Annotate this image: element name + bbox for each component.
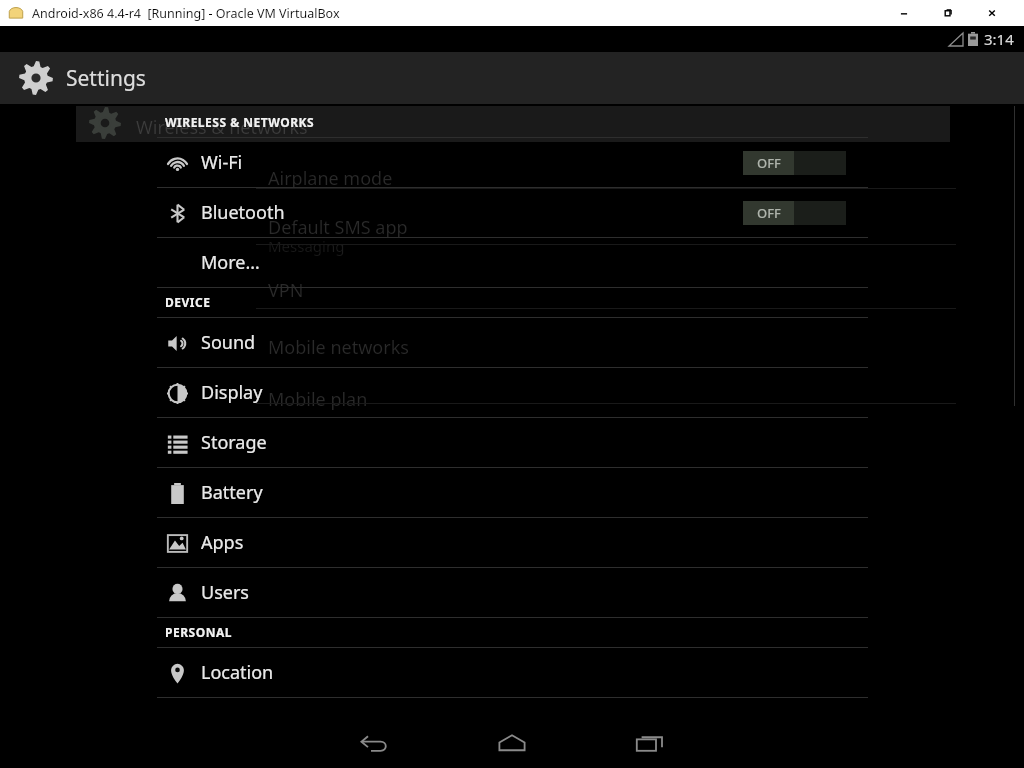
staticText: Android-x86 4.4-r4 [Running] - Oracle VM… [32, 5, 340, 22]
button[interactable]: Location [0, 648, 1024, 697]
staticText: More… [201, 250, 260, 275]
button[interactable]: Home [486, 718, 538, 768]
staticText: VPN [268, 278, 304, 303]
staticText: Mobile plan [268, 387, 368, 412]
staticText: OFF [757, 154, 781, 172]
button[interactable]: Storage [0, 418, 1024, 467]
staticText: Airplane mode [268, 166, 393, 191]
staticText: 3:14 [984, 29, 1014, 49]
button[interactable]: Wi-Fi [0, 138, 1024, 187]
staticText: WIRELESS & NETWORKS [165, 114, 315, 130]
button[interactable]: Sound [0, 318, 1024, 367]
staticText: Bluetooth [201, 200, 285, 225]
staticText: Location [201, 660, 274, 685]
button[interactable]: OFF [743, 151, 846, 175]
staticText: Wi-Fi [201, 150, 243, 175]
staticText: PERSONAL [165, 624, 232, 640]
staticText: Storage [201, 430, 267, 455]
button[interactable]: Minimize [882, 0, 926, 26]
button[interactable]: Restore [926, 0, 970, 26]
button[interactable]: Display [0, 368, 1024, 417]
staticText: DEVICE [165, 294, 211, 310]
button[interactable]: Users [0, 568, 1024, 617]
staticText: Battery [201, 480, 263, 505]
button[interactable]: OFF [743, 201, 846, 225]
staticText: Sound [201, 330, 256, 355]
staticText: Apps [201, 530, 244, 555]
button[interactable]: Bluetooth [0, 188, 1024, 237]
button[interactable]: Apps [0, 518, 1024, 567]
staticText: OFF [757, 204, 781, 222]
staticText: Display [201, 380, 263, 405]
button[interactable]: Back [348, 718, 400, 768]
staticText: Mobile networks [268, 335, 409, 360]
button[interactable]: Recents [624, 718, 676, 768]
button[interactable]: Close [970, 0, 1014, 26]
staticText: Users [201, 580, 249, 605]
staticText: Wireless & networks [136, 115, 308, 140]
staticText: Messaging [268, 236, 345, 256]
button[interactable]: Battery [0, 468, 1024, 517]
button[interactable]: More… [0, 238, 1024, 287]
staticText: Settings [66, 64, 146, 93]
staticText: Default SMS app [268, 215, 408, 240]
button[interactable]: Settings [0, 52, 1024, 104]
